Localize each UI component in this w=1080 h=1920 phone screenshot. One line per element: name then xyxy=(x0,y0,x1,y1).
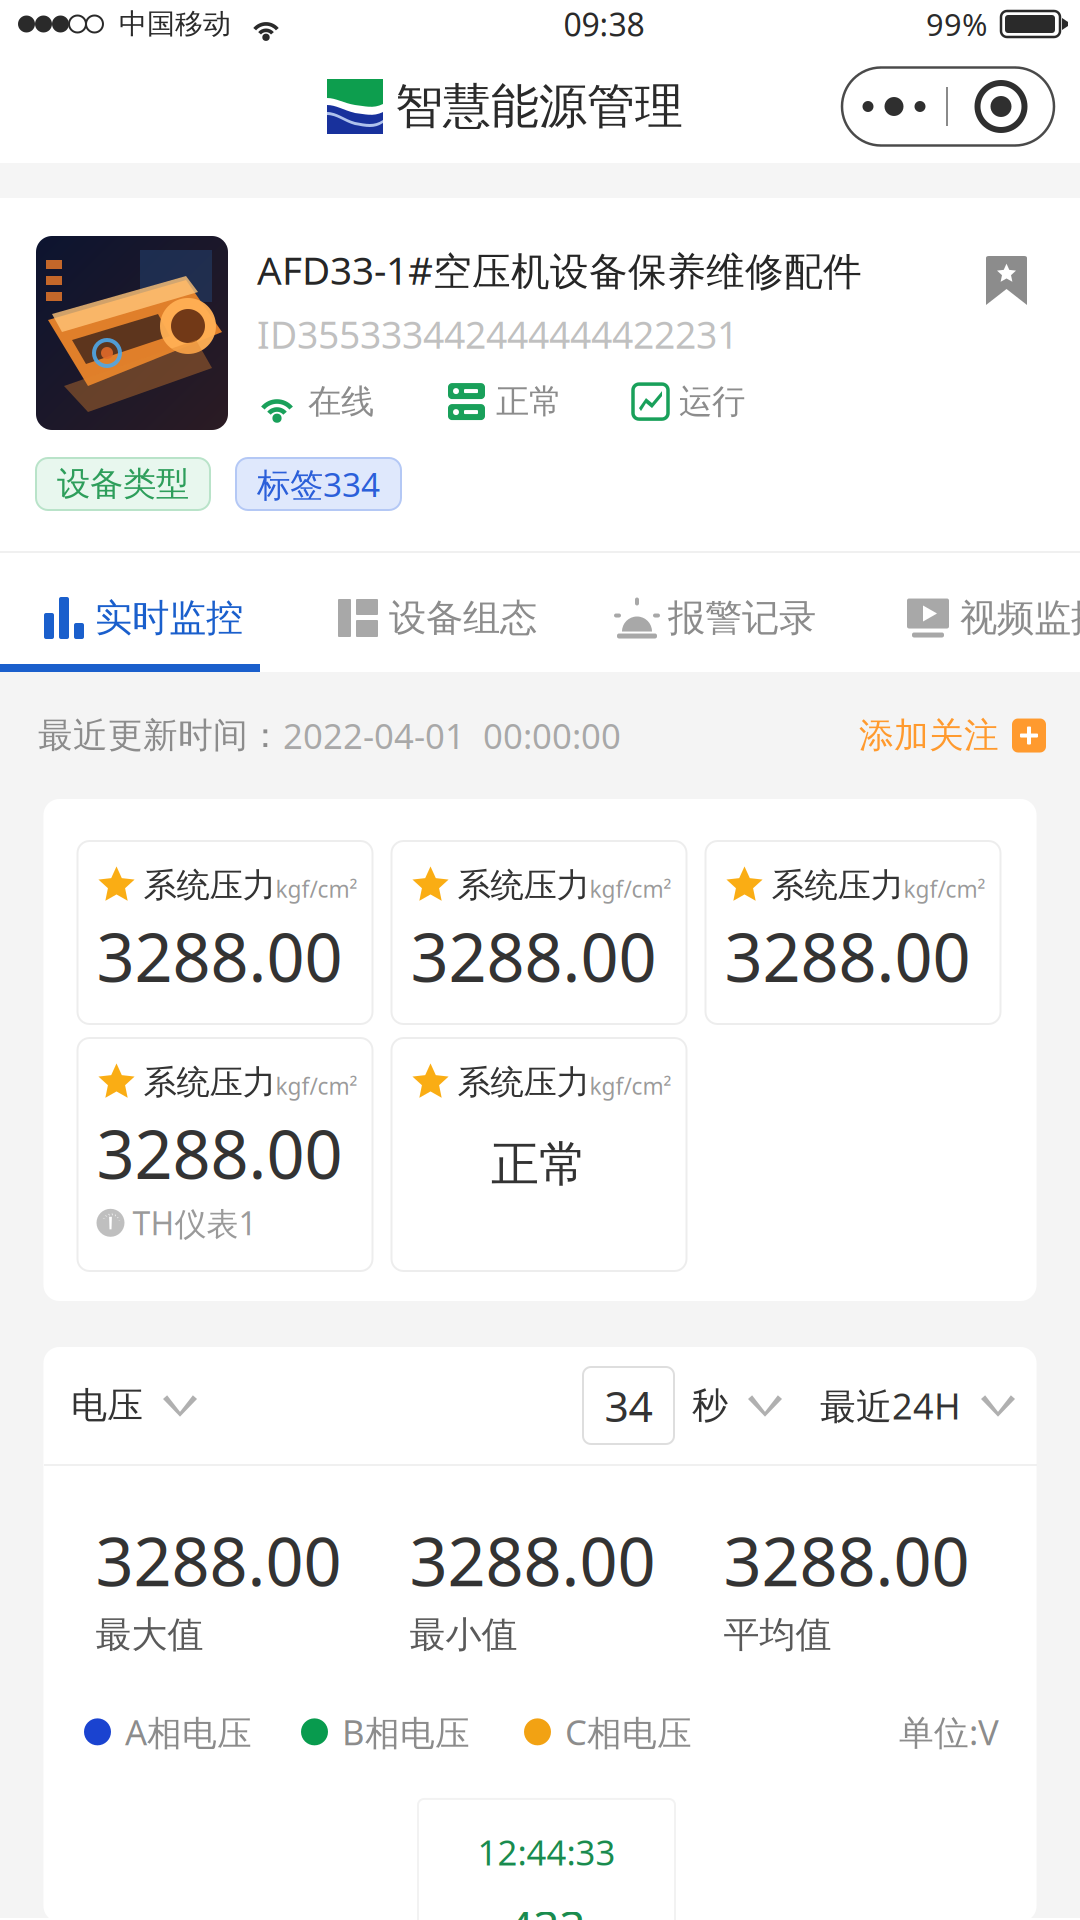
staticText: 平均值 xyxy=(723,1612,831,1657)
staticText: kgf/cm² xyxy=(903,874,985,904)
staticText: 最大值 xyxy=(95,1612,203,1657)
staticText: 设备类型 xyxy=(57,463,189,504)
button[interactable]: 视频监控 xyxy=(907,564,1080,672)
staticText: kgf/cm² xyxy=(589,874,671,904)
staticText: 标签334 xyxy=(257,462,380,506)
staticText: 正常 xyxy=(496,381,562,422)
staticText: 在线 xyxy=(308,381,374,422)
staticText: 报警记录 xyxy=(668,595,816,641)
staticText: B相电压 xyxy=(342,1709,470,1755)
staticText: 34 xyxy=(604,1377,652,1434)
button[interactable]: 电压 xyxy=(71,1383,197,1428)
staticText: 3288.00 xyxy=(96,1109,342,1197)
staticText: kgf/cm² xyxy=(275,1071,357,1101)
staticText: 3288.00 xyxy=(410,912,656,1000)
staticText: kgf/cm² xyxy=(589,1071,671,1101)
staticText: 最近24H xyxy=(820,1382,961,1429)
staticText: 2022-04-01 00:00:00 xyxy=(283,712,621,758)
button[interactable]: 添加关注 xyxy=(859,714,1046,757)
staticText: ID355333442444444422231 xyxy=(257,309,738,359)
staticText: 433 xyxy=(507,1897,585,1920)
staticText: 设备组态 xyxy=(389,595,537,641)
staticText: 智慧能源管理 xyxy=(395,77,683,136)
staticText: 系统压力 xyxy=(771,865,903,906)
staticText: 99% xyxy=(926,4,987,44)
button[interactable]: 秒 xyxy=(692,1383,782,1428)
staticText: 中国移动 xyxy=(119,7,231,41)
staticText: 系统压力 xyxy=(143,1062,275,1103)
staticText: 最小值 xyxy=(409,1612,517,1657)
staticText: kgf/cm² xyxy=(275,874,357,904)
staticText: 正常 xyxy=(491,1135,587,1194)
button[interactable]: More options xyxy=(842,67,1054,145)
staticText: A相电压 xyxy=(125,1709,252,1755)
button[interactable]: Bookmark device xyxy=(986,256,1027,305)
staticText: 系统压力 xyxy=(143,865,275,906)
staticText: C相电压 xyxy=(565,1709,692,1755)
staticText: 实时监控 xyxy=(95,595,243,641)
staticText: 电压 xyxy=(71,1383,143,1428)
staticText: 系统压力 xyxy=(457,865,589,906)
staticText: 3288.00 xyxy=(95,1516,341,1604)
staticText: 09:38 xyxy=(563,3,644,45)
button[interactable]: 设备组态 xyxy=(338,564,614,672)
staticText: AFD33-1#空压机设备保养维修配件 xyxy=(257,244,862,295)
staticText: 秒 xyxy=(692,1383,728,1428)
staticText: 单位:V xyxy=(899,1709,999,1755)
staticText: 3288.00 xyxy=(723,1516,969,1604)
button[interactable]: 最近24H xyxy=(820,1382,1015,1429)
staticText: 12:44:33 xyxy=(477,1829,615,1875)
staticText: TH仪表1 xyxy=(132,1201,256,1244)
staticText: 视频监控 xyxy=(960,595,1080,641)
staticText: 最近更新时间： xyxy=(38,714,283,757)
staticText: 运行 xyxy=(679,381,745,422)
staticText: 3288.00 xyxy=(96,912,342,1000)
staticText: 添加关注 xyxy=(859,714,999,757)
staticText: 系统压力 xyxy=(457,1062,589,1103)
button[interactable]: 实时监控 xyxy=(0,564,338,672)
button[interactable]: 报警记录 xyxy=(614,564,907,672)
staticText: 3288.00 xyxy=(724,912,970,1000)
staticText: 3288.00 xyxy=(409,1516,655,1604)
